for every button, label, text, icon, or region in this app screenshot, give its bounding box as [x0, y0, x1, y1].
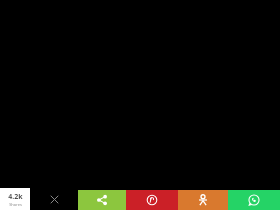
button[interactable]: Share on X: [30, 188, 78, 210]
button[interactable]: Share on Odnoklassniki: [178, 190, 228, 210]
staticText: Shares: [9, 202, 22, 207]
staticText: 4.2k: [8, 192, 23, 202]
button[interactable]: Share: [78, 190, 126, 210]
button[interactable]: Share on WhatsApp: [228, 190, 280, 210]
button[interactable]: Share on Pinterest: [126, 190, 178, 210]
button[interactable]: 4.2k: [0, 188, 30, 210]
